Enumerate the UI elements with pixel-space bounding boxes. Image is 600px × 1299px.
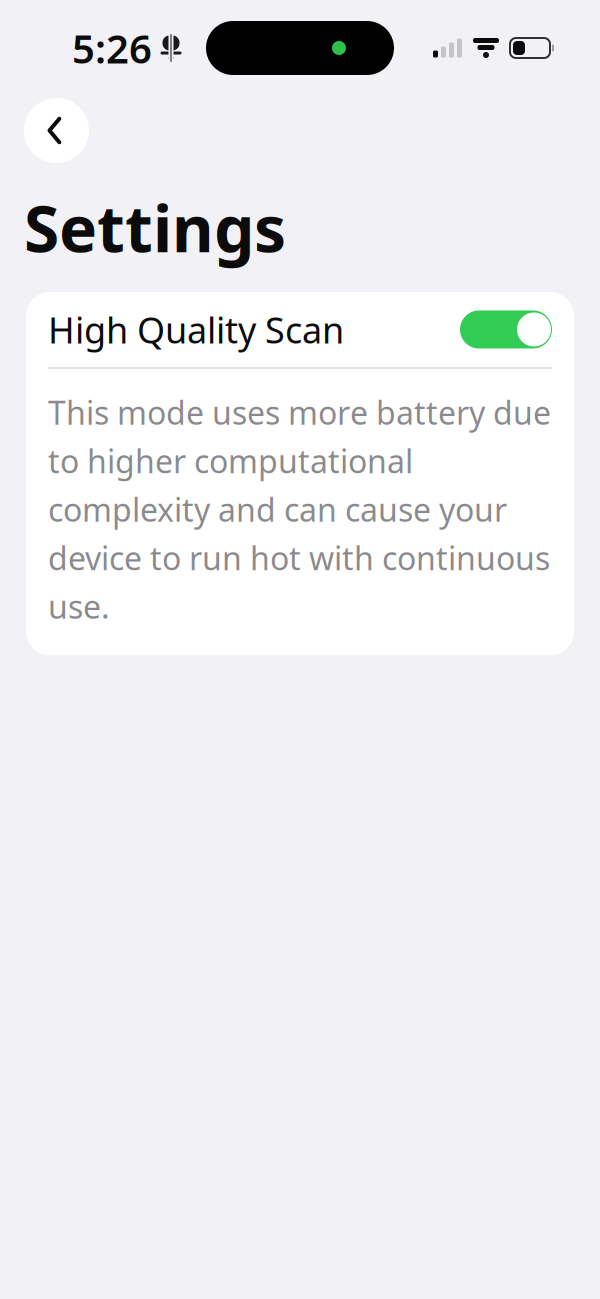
staticText: High Quality Scan (48, 306, 344, 353)
button[interactable]: High Quality Scan (26, 292, 574, 367)
staticText: 5:26 (72, 21, 152, 74)
staticText: This mode uses more battery due to highe… (48, 391, 551, 627)
staticText: Settings (24, 185, 286, 270)
button[interactable]: Back (24, 98, 89, 163)
